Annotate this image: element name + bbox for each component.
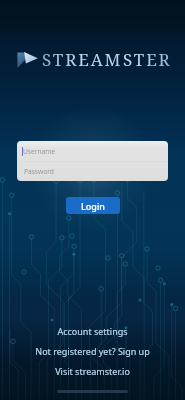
button[interactable]: Password [17,162,168,181]
staticText: Not registered yet? Sign up [35,345,150,357]
button[interactable]: Visit streamster.io [49,364,136,378]
staticText: Username [23,147,56,156]
button[interactable]: Not registered yet? Sign up [29,344,156,358]
staticText: STER [123,48,172,71]
button[interactable]: Account settings [51,324,134,338]
staticText: STREAM [42,48,123,71]
button[interactable]: Username [17,141,168,161]
staticText: Visit streamster.io [55,365,130,377]
button[interactable]: Login [66,197,120,214]
staticText: Password [24,167,54,176]
staticText: Login [81,200,105,212]
staticText: Account settings [57,325,128,337]
